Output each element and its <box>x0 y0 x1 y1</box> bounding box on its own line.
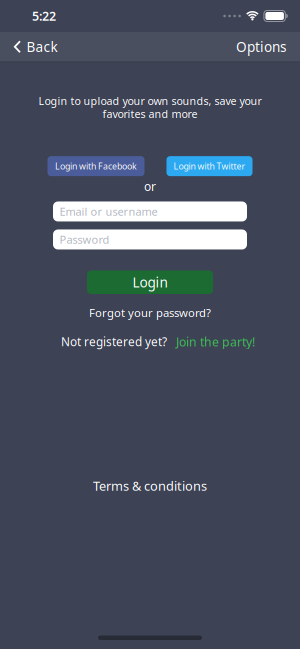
button[interactable]: Forgot your password? <box>89 305 211 320</box>
button[interactable]: Email or username <box>53 201 247 221</box>
button[interactable]: Back <box>13 37 57 56</box>
staticText: Options <box>236 37 287 56</box>
staticText: Forgot your password? <box>89 305 211 320</box>
button[interactable]: Terms & conditions <box>93 477 207 494</box>
button[interactable]: Options <box>236 37 287 56</box>
staticText: favorites and more <box>102 107 197 121</box>
staticText: Login with Facebook <box>55 160 137 172</box>
staticText: Email or username <box>59 204 157 219</box>
staticText: Join the party! <box>176 333 255 350</box>
button[interactable]: Join the party! <box>176 333 255 350</box>
staticText: 5:22 <box>32 7 56 24</box>
staticText: Password <box>59 232 109 247</box>
staticText: Login with Twitter <box>173 160 245 172</box>
staticText: Back <box>26 37 57 56</box>
staticText: Terms & conditions <box>93 477 207 494</box>
button[interactable]: Password <box>53 229 247 249</box>
button[interactable]: Login with Facebook <box>47 156 144 176</box>
staticText: Not registered yet? <box>61 334 167 350</box>
staticText: Login <box>132 273 167 291</box>
button[interactable]: Login <box>87 270 213 294</box>
staticText: or <box>144 178 156 194</box>
staticText: Login to upload your own sounds, save yo… <box>38 93 261 108</box>
button[interactable]: Login with Twitter <box>166 156 252 176</box>
